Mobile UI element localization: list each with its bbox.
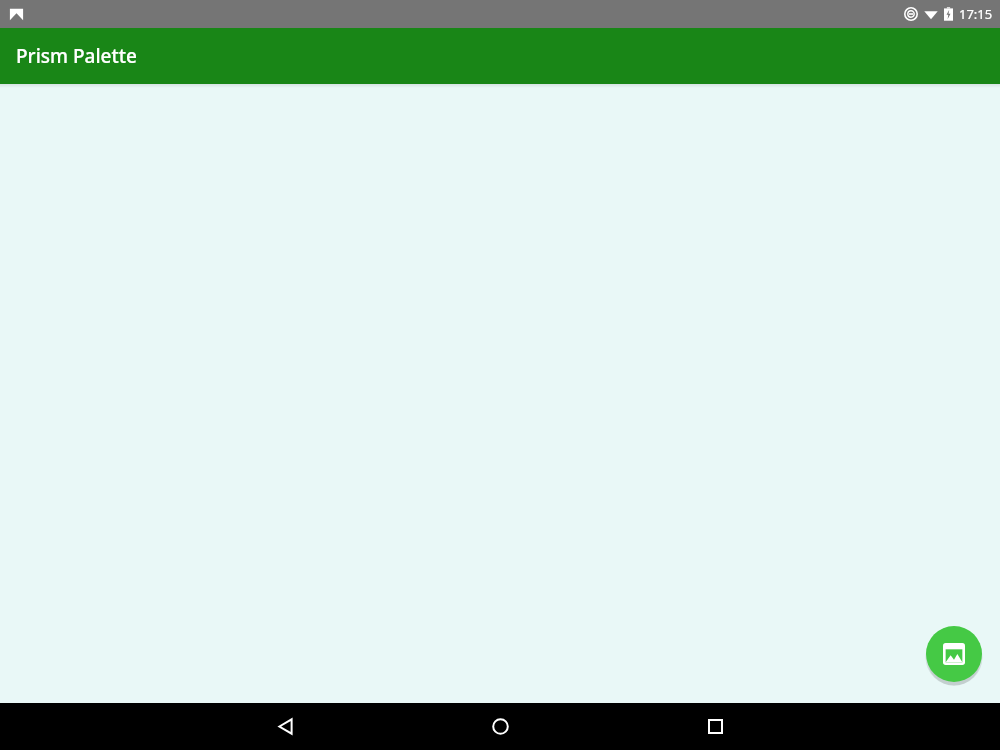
button[interactable]: Add image <box>926 626 982 682</box>
button[interactable]: Home <box>472 703 528 750</box>
staticText: 17:15 <box>959 5 993 23</box>
staticText: Prism Palette <box>16 43 137 69</box>
button[interactable]: Back <box>257 703 313 750</box>
button[interactable]: Recents <box>687 703 743 750</box>
